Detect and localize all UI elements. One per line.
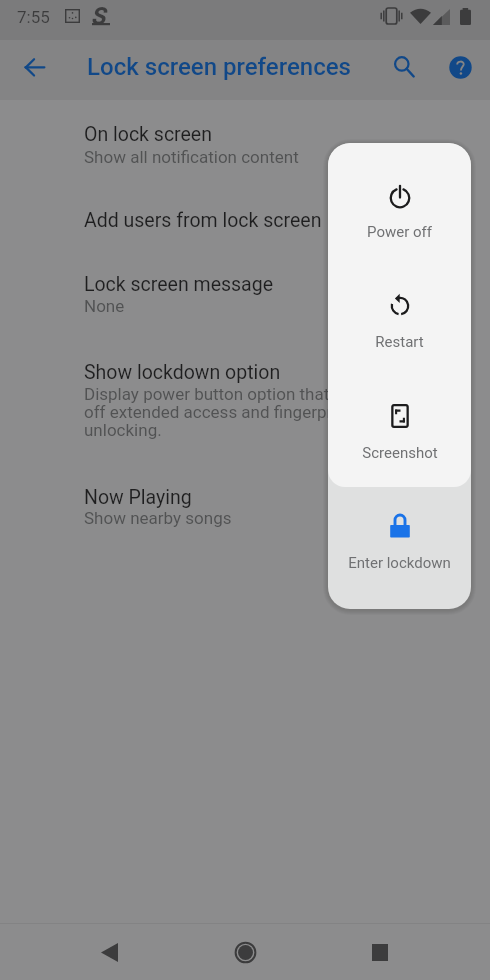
staticText: S: [91, 3, 105, 30]
button[interactable]: Screenshot: [328, 364, 471, 475]
staticText: off extended access and fingerprint: [84, 402, 352, 422]
staticText: Lock screen message: [84, 273, 274, 296]
staticText: 7:55: [17, 7, 50, 27]
staticText: Restart: [375, 333, 424, 351]
staticText: Display power button option that turns: [84, 384, 373, 404]
staticText: unlocking.: [84, 420, 162, 440]
button[interactable]: Recent apps: [356, 928, 404, 976]
staticText: None: [84, 296, 125, 316]
button[interactable]: Enter lockdown: [328, 475, 471, 609]
button[interactable]: Restart: [328, 254, 471, 364]
staticText: Show lockdown option: [84, 361, 281, 384]
button[interactable]: Back: [85, 928, 133, 976]
staticText: On lock screen: [84, 123, 212, 146]
button[interactable]: Navigate up: [12, 44, 57, 89]
staticText: Power off: [367, 223, 432, 241]
staticText: Lock screen preferences: [87, 53, 352, 81]
button[interactable]: Home: [221, 928, 269, 976]
button[interactable]: Help: [438, 45, 482, 89]
staticText: Enter lockdown: [348, 554, 451, 572]
staticText: Show all notification content: [84, 147, 299, 167]
button[interactable]: Search: [382, 45, 426, 89]
staticText: Show nearby songs: [84, 508, 232, 528]
button[interactable]: Power off: [328, 143, 471, 254]
staticText: Screenshot: [362, 444, 438, 462]
staticText: Add users from lock screen: [84, 209, 322, 232]
staticText: Now Playing: [84, 486, 192, 509]
